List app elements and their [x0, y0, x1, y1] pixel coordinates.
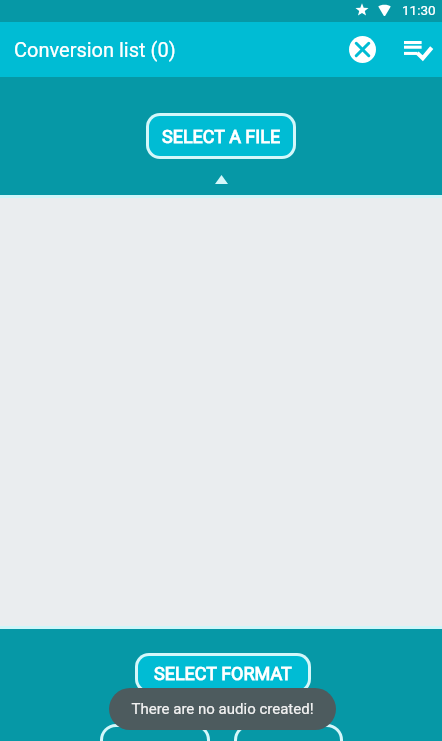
- staticText: 11:30: [402, 2, 436, 18]
- button[interactable]: Clear list: [340, 27, 385, 72]
- staticText: SELECT A FILE: [162, 126, 281, 147]
- staticText: Conversion list (0): [14, 38, 176, 61]
- button[interactable]: CONVERT: [100, 724, 210, 741]
- button[interactable]: SELECT FORMAT: [135, 653, 311, 693]
- button[interactable]: SELECT A FILE: [146, 113, 296, 159]
- staticText: There are no audio created!: [131, 700, 314, 718]
- button[interactable]: PLAY: [234, 724, 343, 741]
- button[interactable]: Select all: [396, 27, 441, 72]
- staticText: SELECT FORMAT: [154, 663, 292, 684]
